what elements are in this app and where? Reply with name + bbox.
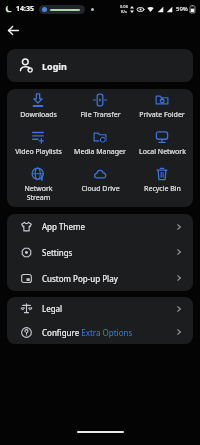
button[interactable]: Downloads (7, 89, 69, 126)
staticText: Downloads (20, 110, 57, 120)
button[interactable]: App Theme (7, 214, 193, 239)
button[interactable]: Configure Extra Options (7, 320, 193, 344)
staticText: App Theme (42, 221, 85, 232)
staticText: Custom Pop-up Play (42, 273, 118, 284)
staticText: Cloud Drive (81, 184, 120, 194)
staticText: Configure Extra Options (42, 327, 133, 338)
button[interactable]: Network Stream (7, 163, 69, 207)
button[interactable]: Local Network (131, 126, 193, 163)
button[interactable]: Media Manager (69, 126, 131, 163)
button[interactable] (8, 25, 19, 36)
button[interactable]: File Transfer (69, 89, 131, 126)
button[interactable]: Cloud Drive (69, 163, 131, 207)
button[interactable]: Recycle Bin (131, 163, 193, 207)
staticText: Legal (42, 303, 63, 314)
staticText: 0.06 (120, 4, 128, 9)
staticText: Media Manager (74, 147, 126, 157)
staticText: Video Playlists (15, 147, 62, 157)
staticText: 59% (176, 5, 188, 13)
staticText: Local Network (139, 147, 186, 157)
staticText: Settings (42, 247, 73, 258)
staticText: Login (42, 60, 67, 72)
staticText: K/s (121, 9, 127, 14)
button[interactable]: Private Folder (131, 89, 193, 126)
button[interactable]: Settings (7, 239, 193, 265)
button[interactable]: Legal (7, 297, 193, 320)
button[interactable]: Custom Pop-up Play (7, 265, 193, 291)
staticText: 14:35 (16, 4, 34, 14)
staticText: File Transfer (80, 110, 121, 120)
staticText: Recycle Bin (144, 184, 181, 194)
button[interactable]: Video Playlists (7, 126, 69, 163)
staticText: Private Folder (139, 110, 185, 120)
staticText: Network Stream (24, 184, 53, 202)
button[interactable]: Login (7, 49, 193, 82)
